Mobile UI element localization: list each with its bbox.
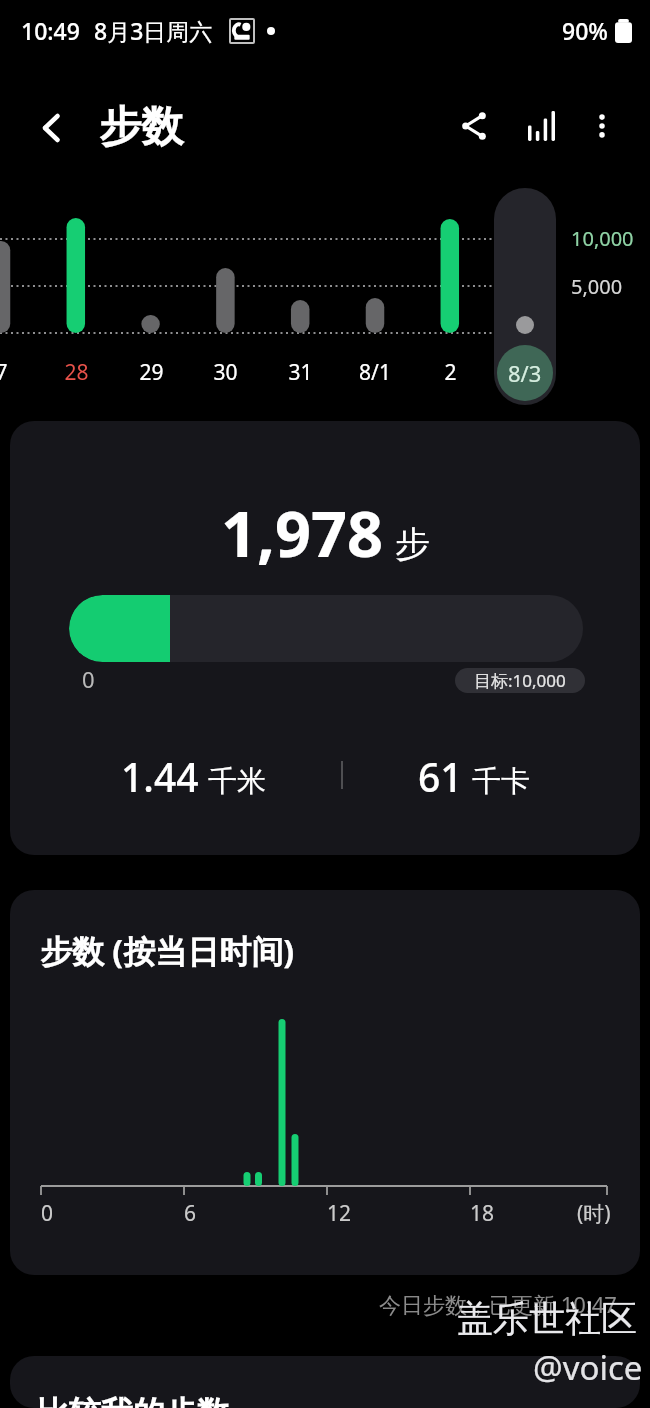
button[interactable]: 比较我的步数 xyxy=(10,1356,640,1408)
staticText: 2 xyxy=(444,358,457,387)
staticText: 步数 (按当日时间) xyxy=(40,929,295,973)
staticText: (时) xyxy=(577,1199,611,1228)
staticText: 今日步数，已更新 10:47 xyxy=(379,1289,617,1317)
staticText: 0 xyxy=(82,664,95,694)
staticText: 目标:10,000 xyxy=(474,669,566,692)
staticText: 10,000 xyxy=(571,225,634,252)
staticText: 10:49 xyxy=(21,15,80,46)
staticText: 28 xyxy=(64,358,89,387)
staticText: 18 xyxy=(470,1199,495,1228)
staticText: 6 xyxy=(184,1199,197,1228)
staticText: 7 xyxy=(0,358,8,387)
staticText: 12 xyxy=(327,1199,352,1228)
button[interactable]: Share xyxy=(446,98,502,154)
staticText: 90% xyxy=(562,15,608,46)
staticText: 千米 xyxy=(208,763,266,800)
staticText: 盖乐世社区 xyxy=(457,1296,637,1341)
staticText: 0 xyxy=(41,1199,54,1228)
staticText: 30 xyxy=(213,358,238,387)
button[interactable]: 步数 (按当日时间) xyxy=(10,890,640,1275)
staticText: 8月3日周六 xyxy=(94,15,213,46)
staticText: 5,000 xyxy=(571,273,623,300)
button[interactable]: 1,978 xyxy=(10,421,640,855)
staticText: 29 xyxy=(139,358,164,387)
button[interactable]: More options xyxy=(574,98,630,154)
button[interactable]: Selected day 8/3 xyxy=(494,188,556,405)
staticText: 1.44 xyxy=(121,750,199,803)
staticText: 8/3 xyxy=(508,358,542,388)
button[interactable]: Back xyxy=(25,102,77,154)
staticText: 61 xyxy=(418,750,463,803)
staticText: 31 xyxy=(288,358,313,387)
staticText: 步数 xyxy=(99,101,183,154)
button[interactable]: Charts xyxy=(513,98,569,154)
staticText: @voice xyxy=(533,1345,643,1390)
staticText: 比较我的步数 xyxy=(37,1393,229,1408)
staticText: 8/1 xyxy=(359,358,391,387)
staticText: 千卡 xyxy=(472,763,530,800)
staticText: 步 xyxy=(395,522,430,566)
staticText: 1,978 xyxy=(221,490,384,576)
